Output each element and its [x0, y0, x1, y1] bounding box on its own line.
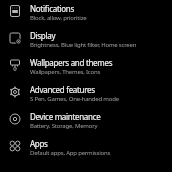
staticText: Wallpapers, Themes, Icons [30, 68, 101, 76]
staticText: Device maintenance [30, 111, 101, 122]
button[interactable]: Advanced features [0, 81, 172, 108]
staticText: Battery, Storage, Memory [30, 122, 98, 130]
button[interactable]: Wallpapers and themes [0, 54, 172, 81]
staticText: Advanced features [30, 84, 95, 95]
button[interactable]: Display [0, 27, 172, 54]
button[interactable]: Notifications [0, 0, 172, 27]
staticText: Brightness, Blue light filter, Home scre… [30, 41, 137, 49]
staticText: Block, allow, prioritize [30, 14, 87, 22]
button[interactable]: Device maintenance [0, 108, 172, 135]
staticText: Default apps, App permissions [30, 149, 111, 157]
staticText: Display [30, 30, 56, 41]
button[interactable]: Apps [0, 135, 172, 162]
staticText: Notifications [30, 3, 74, 14]
staticText: Wallpapers and themes [30, 57, 113, 68]
staticText: S Pen, Games, One-handed mode [30, 95, 119, 103]
staticText: Apps [30, 138, 48, 149]
